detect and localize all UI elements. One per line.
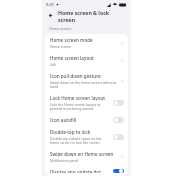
staticText: Lock Home screen layout [50, 95, 106, 101]
staticText: Home screen & lock screen [58, 9, 127, 22]
staticText: Lock the Home screen layout to prevent i… [50, 102, 110, 111]
button[interactable]: Lock Home screen layout [45, 92, 128, 114]
staticText: Notification panel [50, 158, 79, 163]
staticText: 4x6 [50, 62, 56, 67]
staticText: Icon pull-down gesture [50, 73, 101, 79]
staticText: 9:41 [46, 2, 54, 7]
staticText: Double-tap to lock [50, 129, 91, 135]
staticText: Home screen [50, 44, 72, 49]
staticText: Home screen layout [50, 55, 94, 61]
button[interactable]: Toggle [113, 100, 124, 106]
button[interactable]: Toggle [113, 117, 124, 123]
button[interactable]: Toggle [113, 134, 124, 140]
staticText: Home screen [49, 26, 72, 31]
staticText: Swipe down on Home screen [50, 151, 114, 157]
button[interactable]: Double-tap to lock [45, 126, 128, 148]
button[interactable]: Home screen layout [45, 52, 128, 70]
button[interactable]: Back [46, 11, 55, 20]
button[interactable]: Swipe down on Home screen [45, 148, 128, 166]
staticText: Home screen mode [50, 37, 93, 43]
staticText: Icon autofill [50, 117, 77, 123]
staticText: Display app update dot [50, 169, 101, 173]
staticText: Swipe down on the home screen with one h… [50, 80, 117, 89]
staticText: Double-tap a blank space on the home scr… [50, 136, 110, 145]
button[interactable]: Home screen mode [45, 34, 128, 52]
button[interactable]: Icon pull-down gesture [45, 70, 128, 92]
button[interactable]: Toggle [113, 169, 124, 173]
button[interactable]: Display app update dot [45, 166, 128, 176]
button[interactable]: Icon autofill [45, 114, 128, 126]
